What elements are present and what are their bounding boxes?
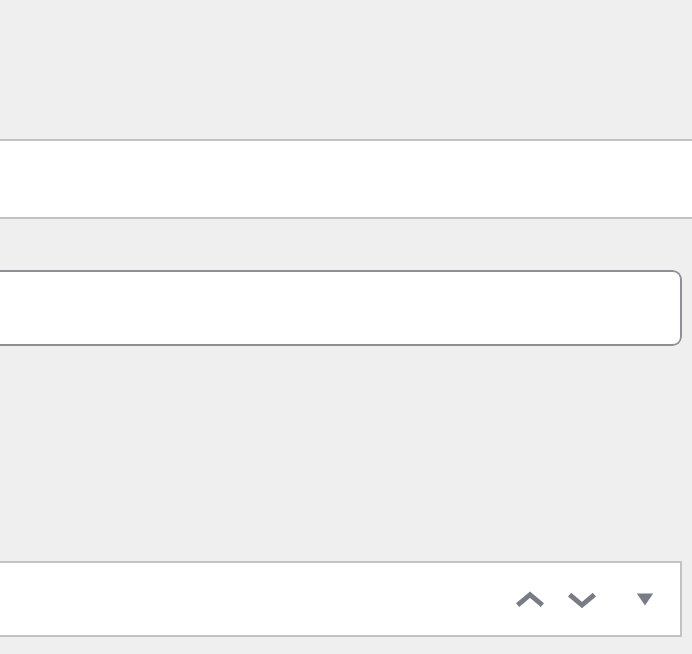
button[interactable]: Previous field xyxy=(506,575,554,623)
button[interactable]: Show suggestions xyxy=(621,575,669,623)
button[interactable]: Next field xyxy=(558,575,606,623)
button[interactable] xyxy=(0,270,682,346)
button[interactable] xyxy=(0,139,692,219)
